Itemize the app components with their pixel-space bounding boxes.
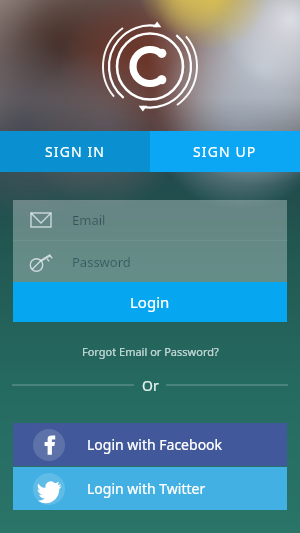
button[interactable]: Password — [13, 241, 287, 282]
button[interactable]: Login with Twitter — [13, 467, 287, 510]
staticText: SIGN IN — [45, 142, 105, 161]
staticText: SIGN UP — [193, 142, 257, 161]
staticText: Email — [72, 211, 106, 229]
button[interactable]: SIGN UP — [150, 131, 300, 172]
button[interactable]: Login — [13, 282, 287, 322]
button[interactable]: Email — [13, 200, 287, 240]
staticText: Login — [130, 292, 170, 312]
staticText: Forgot Email or Password? — [82, 344, 219, 359]
button[interactable]: Login with Facebook — [13, 423, 287, 466]
button[interactable]: SIGN IN — [0, 131, 150, 172]
staticText: Password — [72, 253, 131, 271]
button[interactable]: Forgot Email or Password? — [0, 340, 300, 362]
staticText: Login with Twitter — [87, 479, 206, 498]
staticText: Or — [142, 376, 159, 395]
staticText: Login with Facebook — [87, 435, 223, 454]
